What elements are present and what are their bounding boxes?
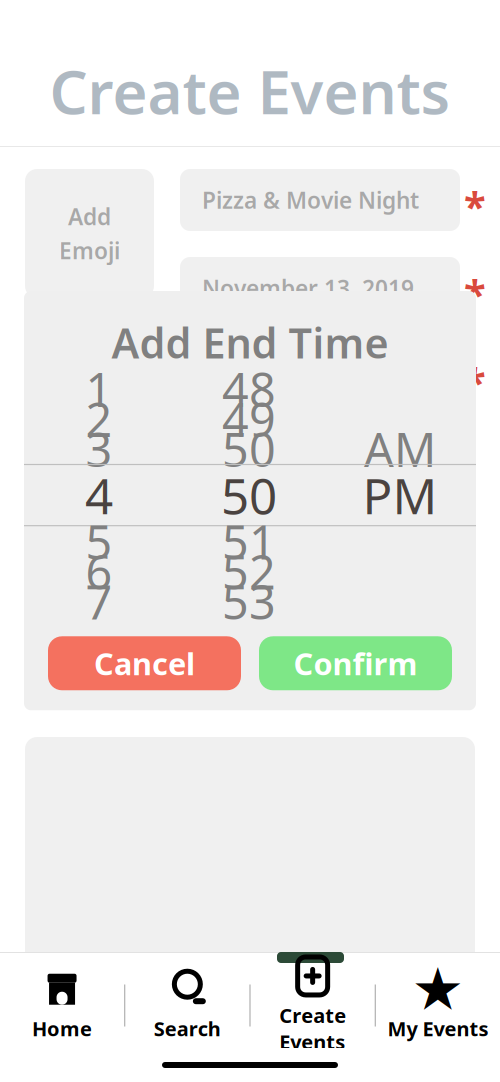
staticText: * [464,267,486,320]
staticText: 2 [85,388,112,450]
staticText: Home [32,1015,92,1042]
staticText: 1 [85,358,112,420]
button[interactable]: Submit Event [25,1013,475,1071]
button[interactable]: Home [0,963,124,1048]
staticText: 50 [221,462,277,528]
button[interactable]: Confirm [259,636,452,690]
staticText: 52 [222,540,276,602]
staticText: Create Events [49,51,450,131]
staticText: 6 [85,540,112,602]
staticText: 3 [85,418,112,480]
staticText: November 13, 2019 [202,273,414,303]
staticText: Add End Time [111,315,388,370]
staticText: 4 [85,462,113,528]
staticText: Confirm [293,643,417,684]
staticText: * [464,355,486,408]
button[interactable]: Create Events [251,963,375,1048]
staticText: Submit Event [160,1023,340,1061]
staticText: Emoji [59,235,120,266]
staticText: Pizza & Movie Night [202,185,419,215]
staticText: 49 [222,388,276,450]
button[interactable]: Search [125,963,249,1048]
staticText: PM [362,462,437,528]
staticText: Add [68,201,111,231]
staticText: 51 [222,510,276,572]
staticText: 7 [85,570,112,632]
staticText: ★ [411,956,464,1022]
staticText: 53 [222,570,276,632]
staticText: My Events [387,1015,488,1042]
staticText: 48 [222,358,276,420]
staticText: Cancel [94,643,195,684]
staticText: Create Events [279,1002,346,1055]
staticText: Search [154,1015,221,1042]
button[interactable]: ★ [376,963,500,1048]
staticText: Enter Time [190,305,345,344]
staticText: 5 [85,510,112,572]
button[interactable]: Cancel [48,636,241,690]
staticText: AM [364,418,436,480]
staticText: 50 [222,418,276,480]
staticText: * [464,179,486,232]
